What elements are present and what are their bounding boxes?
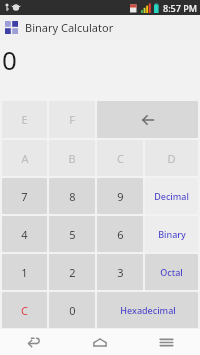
button: A (2, 140, 47, 176)
staticText: Binary (158, 228, 186, 240)
staticText: C (117, 151, 124, 166)
staticText: 7 (21, 189, 28, 204)
staticText: F (69, 112, 75, 127)
staticText: 0 (2, 42, 17, 77)
staticText: 8:57 PM (163, 2, 197, 14)
button[interactable]: Home (66, 329, 133, 355)
staticText: 3 (117, 265, 124, 280)
staticText: A (21, 151, 29, 166)
staticText: B (68, 151, 76, 166)
button[interactable]: 5 (49, 216, 95, 252)
staticText: Decimal (154, 190, 189, 202)
button[interactable]: Octal (145, 254, 198, 290)
button[interactable]: Binary (145, 216, 198, 252)
button[interactable]: 2 (49, 254, 95, 290)
staticText: Octal (160, 266, 183, 278)
button[interactable]: 0 (49, 292, 95, 328)
button[interactable]: 6 (97, 216, 143, 252)
button[interactable]: Back (0, 329, 66, 355)
staticText: D (167, 151, 176, 166)
button[interactable]: 7 (2, 178, 47, 214)
staticText: C (21, 303, 28, 318)
button: E (2, 101, 47, 138)
staticText: 9 (117, 189, 124, 204)
staticText: E (21, 112, 28, 127)
button: B (49, 140, 95, 176)
button[interactable]: Decimal (145, 178, 198, 214)
staticText: 4 (21, 227, 28, 242)
staticText: 1 (21, 265, 28, 280)
button: F (49, 101, 95, 138)
button[interactable]: Backspace (97, 101, 198, 138)
button[interactable]: 4 (2, 216, 47, 252)
button[interactable]: 9 (97, 178, 143, 214)
button[interactable]: Clear (2, 292, 47, 328)
button[interactable]: 3 (97, 254, 143, 290)
button: D (145, 140, 198, 176)
button[interactable]: Menu (133, 329, 200, 355)
staticText: 8 (69, 189, 76, 204)
button[interactable]: 1 (2, 254, 47, 290)
staticText: 2 (69, 265, 76, 280)
staticText: Hexadecimal (120, 304, 176, 316)
staticText: Binary Calculator (25, 20, 114, 35)
staticText: 0 (69, 303, 76, 318)
staticText: 5 (69, 227, 76, 242)
staticText: 6 (117, 227, 124, 242)
button[interactable]: 8 (49, 178, 95, 214)
button[interactable]: Hexadecimal (97, 292, 198, 328)
button: C (97, 140, 143, 176)
